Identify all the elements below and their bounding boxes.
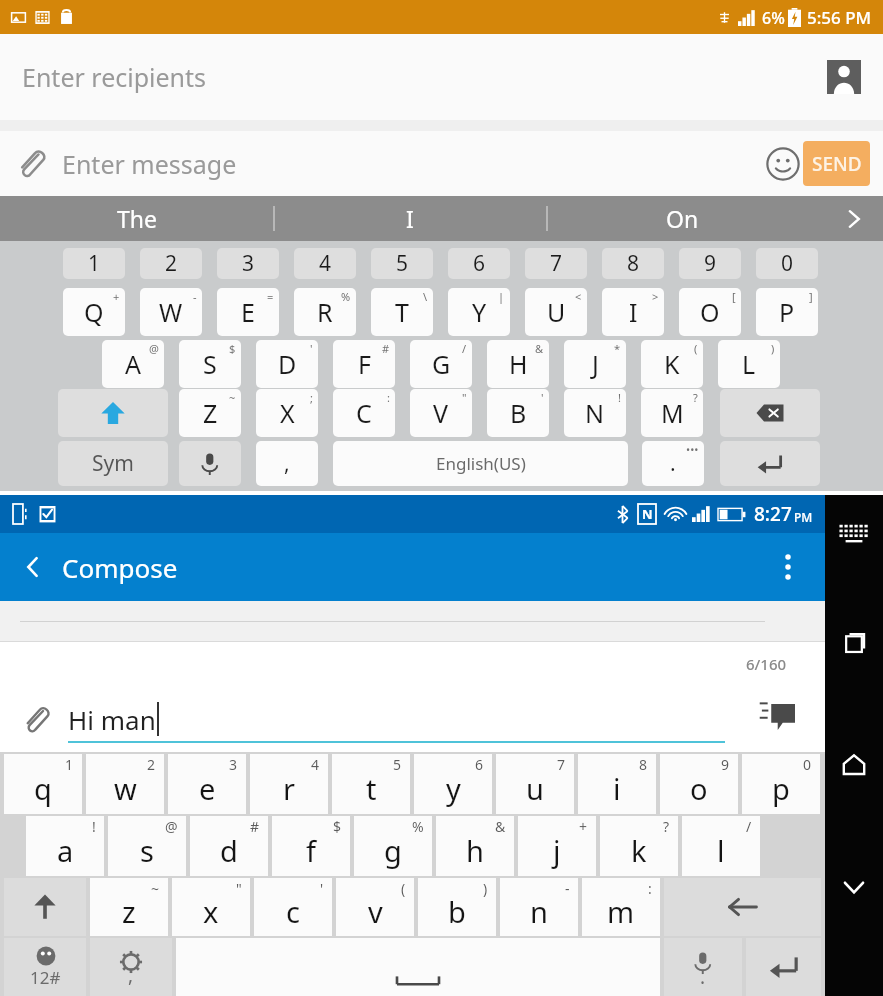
button[interactable]: g [354,816,432,876]
button[interactable]: 5 [371,248,433,279]
button[interactable]: Attach [14,147,48,181]
button[interactable]: q [4,754,82,814]
staticText: v [368,892,383,931]
button[interactable]: Settings [90,938,172,996]
button[interactable]: Space [176,938,660,996]
button[interactable]: Attach [20,704,52,736]
button[interactable]: X [256,389,318,437]
button[interactable]: 4 [294,248,356,279]
button[interactable]: s [108,816,186,876]
button[interactable]: l [682,816,760,876]
button[interactable]: Y [448,288,510,336]
button[interactable]: k [600,816,678,876]
button[interactable]: e [168,754,246,814]
button[interactable]: G [410,340,472,388]
button[interactable]: t [332,754,410,814]
button[interactable]: English(US) [333,441,628,486]
button[interactable]: Hide keyboard [830,863,878,911]
button[interactable]: W [140,288,202,336]
button[interactable]: c [254,878,332,936]
button[interactable]: R [294,288,356,336]
button[interactable]: w [86,754,164,814]
button[interactable]: Enter [746,938,821,996]
button[interactable]: L [718,340,780,388]
button[interactable]: z [90,878,168,936]
button[interactable]: 6 [448,248,510,279]
button[interactable]: K [641,340,703,388]
button[interactable]: x [172,878,250,936]
button[interactable]: 9 [679,248,741,279]
button[interactable]: Sym [58,441,168,486]
button[interactable]: 8 [602,248,664,279]
button[interactable]: Enter recipients [0,34,883,120]
button[interactable]: Enter [720,441,820,486]
button[interactable]: m [582,878,660,936]
button[interactable]: 2 [140,248,202,279]
button[interactable]: I [273,196,546,241]
button[interactable]: i [578,754,656,814]
button[interactable]: u [496,754,574,814]
button[interactable]: Emoji [766,147,800,181]
button[interactable]: h [436,816,514,876]
button[interactable]: v [336,878,414,936]
button[interactable]: J [564,340,626,388]
button[interactable]: O [679,288,741,336]
button[interactable]: Home [830,741,878,789]
button[interactable]: S [179,340,241,388]
button[interactable]: U [525,288,587,336]
button[interactable]: o [660,754,738,814]
button[interactable]: More options [769,548,807,586]
button[interactable]: F [333,340,395,388]
button[interactable]: E [217,288,279,336]
button[interactable]: I [602,288,664,336]
button[interactable]: T [371,288,433,336]
button[interactable]: N [564,389,626,437]
staticText: t [366,769,377,808]
button[interactable]: Add contact [827,60,861,94]
button[interactable]: Shift [4,878,86,936]
button[interactable]: Enter message [62,147,237,181]
button[interactable]: 3 [217,248,279,279]
button[interactable]: Symbols [4,938,86,996]
button[interactable]: Backspace [720,389,820,437]
button[interactable]: r [250,754,328,814]
button[interactable]: M [641,389,703,437]
button[interactable]: , [256,441,318,486]
button[interactable]: D [256,340,318,388]
button[interactable]: Shift [58,389,168,437]
button[interactable]: On [546,196,819,241]
staticText: u [526,769,544,808]
button[interactable]: Z [179,389,241,437]
button[interactable]: 1 [63,248,125,279]
button[interactable]: Send message [759,694,795,730]
button[interactable]: Voice input [179,441,241,486]
button[interactable]: Recents [830,619,878,667]
button[interactable]: V [410,389,472,437]
button[interactable]: a [26,816,104,876]
button[interactable]: Hi man [68,702,725,743]
button[interactable]: . [642,441,704,486]
button[interactable]: A [102,340,164,388]
button[interactable]: 0 [756,248,818,279]
button[interactable]: b [418,878,496,936]
button[interactable]: Backspace [664,878,821,936]
button[interactable]: H [487,340,549,388]
button[interactable]: d [190,816,268,876]
button[interactable]: Q [63,288,125,336]
button[interactable]: B [487,389,549,437]
staticText: 1 [88,249,101,278]
button[interactable]: Voice input [664,938,742,996]
button[interactable]: More suggestions [839,204,869,234]
button[interactable]: Back [14,548,52,586]
button[interactable]: 7 [525,248,587,279]
button[interactable]: y [414,754,492,814]
button[interactable]: p [742,754,820,814]
button[interactable]: The [0,196,273,241]
button[interactable]: j [518,816,596,876]
button[interactable]: Keyboard [831,511,877,557]
button[interactable]: n [500,878,578,936]
button[interactable]: P [756,288,818,336]
button[interactable]: SEND [803,141,870,186]
button[interactable]: f [272,816,350,876]
button[interactable]: C [333,389,395,437]
